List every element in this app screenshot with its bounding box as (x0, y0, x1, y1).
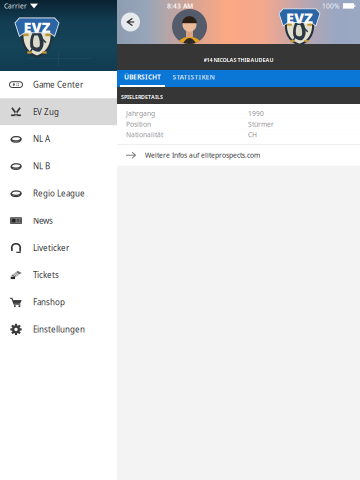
button[interactable]: Fanshop (0, 289, 117, 316)
staticText: #14 NICOLAS THIBAUDEAU (203, 56, 273, 63)
staticText: Carrier (4, 2, 27, 10)
button[interactable]: Regio League (0, 180, 117, 207)
staticText: Regio League (33, 188, 85, 199)
staticText: 1990 (248, 109, 264, 118)
staticText: 100% (322, 2, 340, 10)
staticText: NL A (33, 134, 50, 144)
button[interactable]: ÜBERSICHT (120, 70, 165, 87)
staticText: Einstellungen (33, 324, 85, 335)
button[interactable]: NL B (0, 153, 117, 180)
staticText: EVZ (286, 8, 313, 28)
staticText: ÜBERSICHT (124, 73, 161, 81)
staticText: SPIELERDETAILS (121, 93, 163, 101)
button[interactable]: EV Zug (0, 98, 117, 125)
staticText: News (33, 215, 53, 226)
staticText: 8:43 AM (167, 2, 193, 10)
staticText: Liveticker (33, 242, 69, 253)
staticText: Weitere Infos auf eliteprospects.com (145, 151, 260, 160)
staticText: EVZ (23, 17, 50, 37)
staticText: EV Zug (33, 106, 59, 117)
staticText: Stürmer (248, 120, 274, 128)
button[interactable]: STATISTIKEN (171, 70, 216, 87)
staticText: STATISTIKEN (172, 73, 214, 81)
staticText: Game Center (33, 79, 83, 90)
staticText: Tickets (33, 270, 59, 280)
staticText: Jahrgang (126, 109, 155, 118)
button[interactable]: Tickets (0, 261, 117, 289)
staticText: Position (126, 120, 151, 128)
button[interactable]: Weitere Infos auf eliteprospects.com (117, 145, 360, 166)
button[interactable]: Liveticker (0, 234, 117, 261)
button[interactable]: Einstellungen (0, 316, 117, 343)
staticText: NL B (33, 161, 50, 171)
button[interactable]: NL A (0, 125, 117, 153)
staticText: CH (248, 130, 257, 139)
staticText: Nationalität (126, 130, 163, 139)
staticText: Fanshop (33, 297, 65, 307)
button[interactable]: Game Center (0, 71, 117, 98)
button[interactable]: Back (118, 9, 143, 34)
button[interactable]: News (0, 207, 117, 234)
